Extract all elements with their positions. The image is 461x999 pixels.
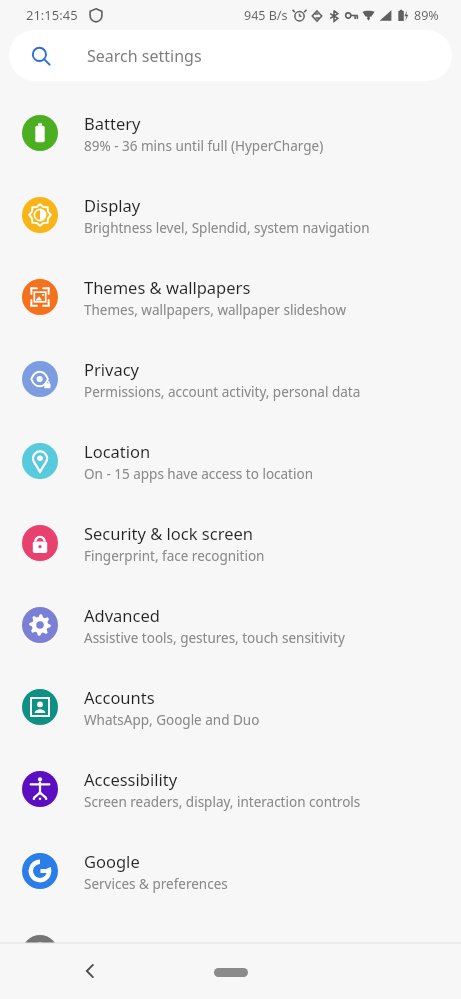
staticText: 21:15:45 <box>26 6 78 24</box>
staticText: Accessibility <box>84 768 178 790</box>
button[interactable]: Themes & wallpapers <box>0 256 461 338</box>
staticText: WhatsApp, Google and Duo <box>84 711 260 729</box>
button[interactable]: Privacy <box>0 338 461 420</box>
button[interactable]: Google <box>0 830 461 912</box>
staticText: Advanced <box>84 604 160 626</box>
button[interactable]: Accounts <box>0 666 461 748</box>
staticText: On - 15 apps have access to location <box>84 465 313 483</box>
button[interactable]: Location <box>0 420 461 502</box>
other: Search <box>31 46 51 66</box>
staticText: 945 B/s <box>244 7 288 24</box>
staticText: Fingerprint, face recognition <box>84 547 265 565</box>
staticText: Security & lock screen <box>84 522 253 544</box>
staticText: Privacy <box>84 358 140 380</box>
button[interactable]: Advanced <box>0 584 461 666</box>
staticText: Brightness level, Splendid, system navig… <box>84 219 370 237</box>
button[interactable]: Accessibility <box>0 748 461 830</box>
staticText: Services & preferences <box>84 875 228 893</box>
button[interactable]: Display <box>0 174 461 256</box>
staticText: Themes & wallpapers <box>84 276 251 298</box>
staticText: System <box>84 942 141 964</box>
button[interactable]: System <box>0 912 461 994</box>
staticText: 89% <box>414 7 439 24</box>
staticText: Display <box>84 194 141 216</box>
staticText: Permissions, account activity, personal … <box>84 383 361 401</box>
staticText: Screen readers, display, interaction con… <box>84 793 361 811</box>
button[interactable]: Back <box>68 949 112 993</box>
staticText: 89% - 36 mins until full (HyperCharge) <box>84 137 324 155</box>
button[interactable]: Security & lock screen <box>0 502 461 584</box>
button[interactable]: Home <box>214 968 248 977</box>
staticText: Accounts <box>84 686 155 708</box>
staticText: Google <box>84 850 140 872</box>
staticText: Location <box>84 440 151 462</box>
button[interactable]: Battery <box>0 92 461 174</box>
staticText: Themes, wallpapers, wallpaper slideshow <box>84 301 347 319</box>
staticText: Battery <box>84 112 141 134</box>
staticText: Assistive tools, gestures, touch sensiti… <box>84 629 345 647</box>
button[interactable]: Search <box>9 30 452 81</box>
staticText: Search settings <box>87 45 202 67</box>
